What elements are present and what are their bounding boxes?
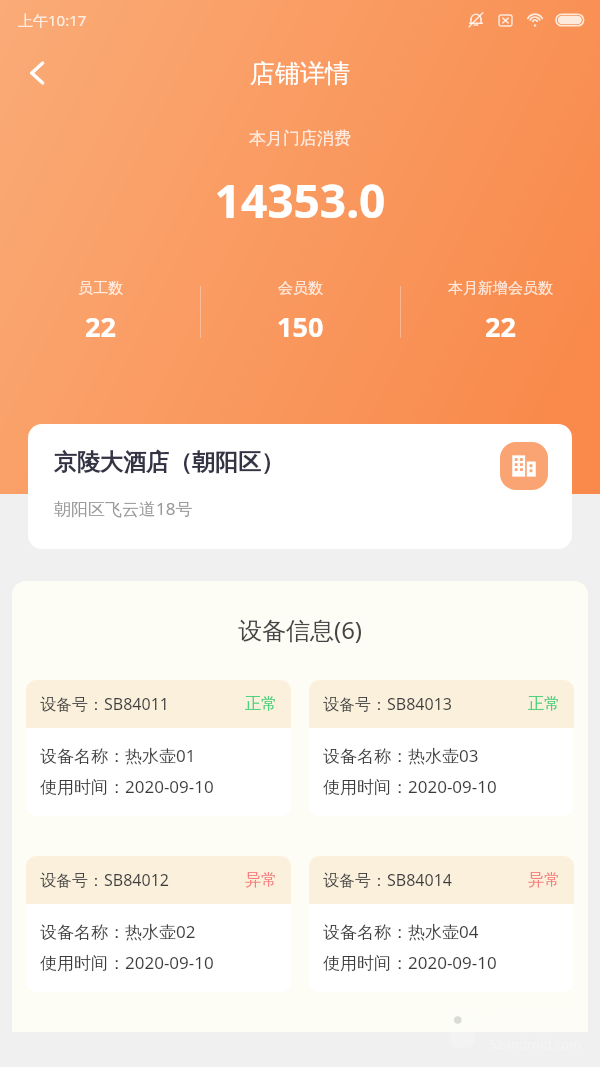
button[interactable]: 会员数 [201, 279, 400, 345]
staticText: 150 [277, 308, 324, 345]
staticText: 本月门店消费 [0, 128, 600, 149]
staticText: 14353.0 [0, 169, 600, 232]
staticText: 设备号：SB84012 [40, 869, 169, 891]
staticText: 设备名称：热水壶04 [323, 920, 479, 943]
button[interactable]: 设备号：SB84013 [309, 680, 574, 816]
staticText: 设备号：SB84014 [323, 869, 452, 891]
staticText: 设备号：SB84013 [323, 693, 452, 715]
staticText: 设备名称：热水壶01 [40, 744, 196, 767]
staticText: 设备号：SB84011 [40, 693, 169, 715]
button[interactable]: 设备号：SB84012 [26, 856, 291, 992]
staticText: 员工数 [78, 279, 123, 298]
staticText: 22 [485, 308, 516, 345]
other: Store [500, 442, 548, 490]
button[interactable]: 京陵大酒店（朝阳区） [28, 424, 572, 549]
staticText: 使用时间：2020-09-10 [323, 775, 497, 798]
staticText: 朝阳区飞云道18号 [54, 497, 193, 520]
staticText: 设备名称：热水壶03 [323, 744, 479, 767]
staticText: 使用时间：2020-09-10 [40, 951, 214, 974]
staticText: 使用时间：2020-09-10 [323, 951, 497, 974]
staticText: 异常 [528, 870, 560, 890]
staticText: 正常 [245, 694, 277, 714]
button[interactable]: 设备号：SB84011 [26, 680, 291, 816]
staticText: 本月新增会员数 [448, 279, 553, 298]
button[interactable]: 设备号：SB84014 [309, 856, 574, 992]
staticText: 会员数 [278, 279, 323, 298]
button[interactable]: 本月新增会员数 [401, 279, 600, 345]
staticText: 上午10:17 [18, 10, 87, 30]
staticText: 设备信息(6) [12, 613, 588, 646]
staticText: 正常 [528, 694, 560, 714]
staticText: 异常 [245, 870, 277, 890]
button[interactable]: 员工数 [0, 279, 200, 345]
staticText: 设备名称：热水壶02 [40, 920, 196, 943]
staticText: 使用时间：2020-09-10 [40, 775, 214, 798]
staticText: 我爱安卓 [489, 1007, 577, 1035]
button[interactable]: Back [10, 45, 66, 101]
staticText: 京陵大酒店（朝阳区） [54, 448, 284, 477]
staticText: 22 [85, 308, 116, 345]
staticText: 店铺详情 [250, 58, 350, 89]
